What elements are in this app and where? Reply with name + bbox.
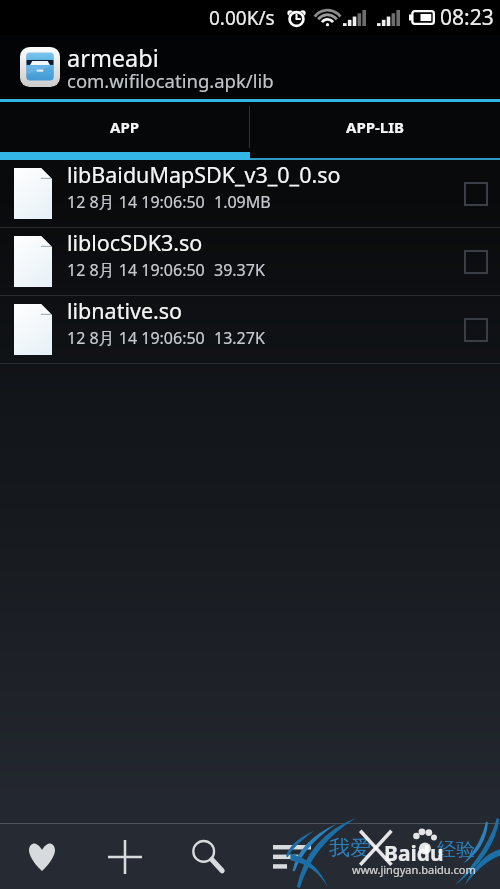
button[interactable]: Favorites (1, 824, 83, 889)
button[interactable]: Search (167, 824, 249, 889)
staticText: www.jingyan.baidu.com (352, 862, 476, 877)
staticText: 1.09MB (214, 191, 271, 213)
staticText: 我爱 (329, 835, 371, 861)
button[interactable]: liblocSDK3.so (0, 228, 500, 295)
staticText: 0.00K/s (209, 5, 275, 31)
staticText: 12 8月 14 19:06:50 (67, 191, 205, 213)
button[interactable]: APP (0, 102, 249, 152)
button[interactable]: Select liblocSDK3.so (452, 238, 500, 286)
button[interactable]: libnative.so (0, 296, 500, 363)
button[interactable]: libBaiduMapSDK_v3_0_0.so (0, 160, 500, 227)
staticText: 12 8月 14 19:06:50 (67, 259, 205, 281)
staticText: APP (110, 117, 140, 137)
staticText: Baidu (384, 839, 444, 868)
staticText: APP-LIB (346, 117, 405, 137)
staticText: 13.27K (214, 327, 265, 349)
button[interactable]: APP-LIB (250, 102, 500, 152)
staticText: libBaiduMapSDK_v3_0_0.so (67, 160, 341, 189)
button[interactable]: Select libnative.so (452, 306, 500, 354)
button[interactable]: Sort (251, 824, 333, 889)
staticText: 39.37K (214, 259, 265, 281)
staticText: libnative.so (67, 296, 183, 325)
staticText: com.wifilocating.apk/lib (67, 68, 274, 93)
staticText: 08:23 (440, 3, 494, 32)
button[interactable]: Add (84, 824, 166, 889)
button[interactable]: armeabi (0, 35, 500, 99)
staticText: 经验 (437, 838, 475, 862)
button[interactable]: Select libBaiduMapSDK_v3_0_0.so (452, 170, 500, 218)
staticText: liblocSDK3.so (67, 228, 203, 257)
staticText: armeabi (67, 42, 159, 74)
staticText: 12 8月 14 19:06:50 (67, 327, 205, 349)
